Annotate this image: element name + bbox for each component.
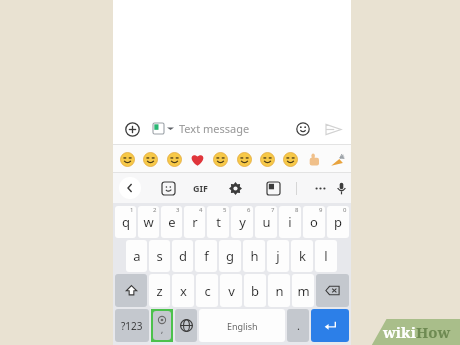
button[interactable]: Translate — [262, 177, 284, 199]
button[interactable]: u — [255, 206, 277, 238]
staticText: w — [143, 213, 154, 231]
button[interactable]: GIF — [193, 182, 208, 194]
button[interactable]: n — [268, 274, 290, 307]
staticText: y — [239, 213, 246, 231]
button[interactable]: m — [292, 274, 314, 307]
button[interactable]: Emoji 4 — [187, 149, 207, 169]
button[interactable]: Stickers — [157, 177, 179, 199]
button[interactable]: j — [267, 240, 289, 272]
button[interactable]: Emoji 8 — [280, 149, 300, 169]
button[interactable]: w — [138, 206, 159, 238]
staticText: n — [275, 282, 284, 300]
button[interactable]: t — [207, 206, 229, 238]
staticText: f — [204, 247, 209, 265]
staticText: 8 — [295, 206, 299, 214]
staticText: 2 — [153, 206, 157, 214]
staticText: e — [168, 213, 176, 231]
staticText: a — [133, 247, 141, 265]
button[interactable]: Shift — [115, 274, 147, 307]
button[interactable]: c — [196, 274, 218, 307]
button[interactable]: v — [220, 274, 242, 307]
button[interactable]: l — [315, 240, 337, 272]
staticText: q — [122, 213, 130, 231]
button[interactable]: x — [172, 274, 194, 307]
button[interactable]: Settings — [224, 177, 246, 199]
staticText: h — [250, 247, 259, 265]
staticText: , — [161, 324, 164, 335]
staticText: i — [288, 213, 292, 231]
staticText: 0 — [343, 206, 347, 214]
staticText: 5 — [223, 206, 227, 214]
button[interactable]: g — [219, 240, 241, 272]
button[interactable]: s — [149, 240, 170, 272]
staticText: g — [226, 247, 234, 265]
button[interactable]: r — [184, 206, 205, 238]
button[interactable]: d — [172, 240, 193, 272]
staticText: p — [334, 213, 342, 231]
button[interactable]: h — [243, 240, 265, 272]
button[interactable]: i — [279, 206, 301, 238]
button[interactable]: o — [303, 206, 325, 238]
button[interactable]: Back — [119, 177, 141, 199]
staticText: o — [310, 213, 318, 231]
staticText: z — [156, 282, 163, 300]
button[interactable]: Change language — [175, 309, 197, 342]
staticText: t — [216, 213, 221, 231]
button[interactable]: Emoji 3 — [164, 149, 184, 169]
staticText: b — [251, 282, 259, 300]
button[interactable]: . — [287, 309, 309, 342]
button[interactable]: Backspace — [316, 274, 349, 307]
button[interactable]: y — [231, 206, 253, 238]
staticText: 4 — [199, 206, 203, 214]
staticText: c — [204, 282, 211, 300]
button[interactable]: Emoji 2 — [140, 149, 160, 169]
button[interactable]: a — [126, 240, 147, 272]
staticText: 9 — [319, 206, 323, 214]
staticText: u — [262, 213, 271, 231]
staticText: 6 — [247, 206, 251, 214]
button[interactable]: k — [291, 240, 313, 272]
button[interactable]: Voice input — [331, 177, 351, 199]
button[interactable]: q — [115, 206, 136, 238]
button[interactable]: English — [199, 309, 285, 342]
staticText: How — [416, 322, 451, 342]
staticText: wiki — [383, 322, 416, 342]
button[interactable]: b — [244, 274, 266, 307]
staticText: r — [192, 213, 198, 231]
staticText: x — [180, 282, 187, 300]
staticText: ?123 — [121, 319, 143, 333]
button[interactable]: Comma and settings — [153, 311, 171, 340]
staticText: English — [227, 320, 258, 332]
button[interactable]: z — [149, 274, 170, 307]
button[interactable]: Enter — [311, 309, 349, 342]
button[interactable]: Emoji 6 — [234, 149, 254, 169]
button[interactable]: Emoji 9 — [304, 149, 324, 169]
staticText: 1 — [130, 206, 134, 214]
button[interactable]: p — [327, 206, 349, 238]
staticText: 7 — [271, 206, 275, 214]
button[interactable]: Emoji 10 — [327, 149, 347, 169]
staticText: s — [156, 247, 163, 265]
staticText: m — [297, 282, 310, 300]
staticText: Text message — [179, 121, 250, 136]
staticText: l — [324, 247, 328, 265]
button[interactable]: Emoji 5 — [210, 149, 230, 169]
staticText: GIF — [193, 182, 208, 194]
staticText: v — [228, 282, 235, 300]
button[interactable]: e — [161, 206, 182, 238]
button[interactable]: Emoji — [291, 117, 315, 141]
button[interactable]: Attach — [119, 116, 145, 142]
staticText: d — [179, 247, 187, 265]
staticText: 3 — [176, 206, 180, 214]
staticText: j — [276, 247, 280, 265]
button[interactable]: Emoji 1 — [117, 149, 137, 169]
staticText: . — [297, 318, 300, 333]
button[interactable]: f — [195, 240, 217, 272]
button[interactable]: Emoji 7 — [257, 149, 277, 169]
button[interactable]: More options — [309, 177, 331, 199]
button[interactable]: Send — [321, 117, 345, 141]
button[interactable]: ?123 — [115, 309, 149, 342]
staticText: k — [299, 247, 306, 265]
